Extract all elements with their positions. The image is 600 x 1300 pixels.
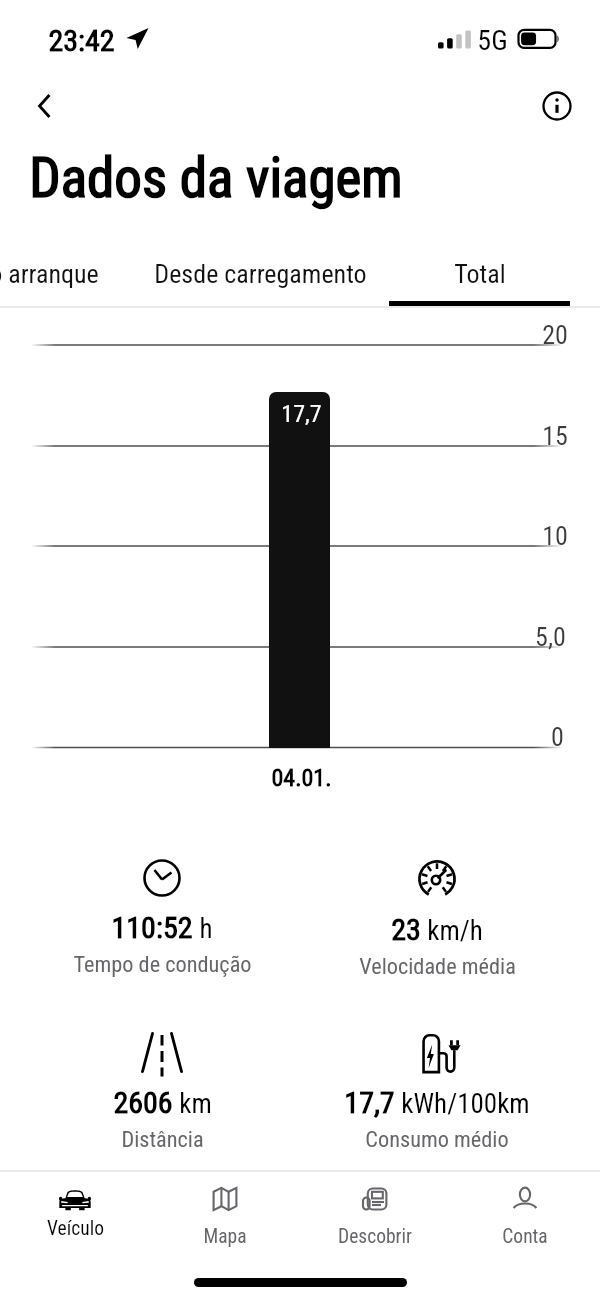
staticText: 17,7 xyxy=(281,400,322,428)
staticText: 5G xyxy=(477,24,508,57)
staticText: km xyxy=(179,1088,212,1120)
button[interactable]: 17,7 xyxy=(287,1031,587,1152)
staticText: 10 xyxy=(542,521,568,551)
button[interactable]: Back xyxy=(21,84,65,128)
staticText: Velocidade média xyxy=(359,953,516,979)
staticText: 23 xyxy=(391,912,421,947)
staticText: Consumo médio xyxy=(365,1126,509,1152)
staticText: 0 xyxy=(551,722,564,752)
staticText: Distância xyxy=(121,1126,204,1152)
staticText: Mapa xyxy=(203,1225,247,1248)
staticText: 2606 xyxy=(113,1085,173,1120)
button[interactable]: Desde carregamento xyxy=(150,242,370,306)
staticText: Total xyxy=(454,259,506,289)
staticText: 5,0 xyxy=(535,622,566,652)
staticText: 20 xyxy=(542,320,568,350)
button[interactable]: Total xyxy=(389,242,570,306)
button[interactable]: Conta xyxy=(450,1184,600,1254)
button[interactable]: Descobrir xyxy=(300,1184,450,1254)
staticText: km/h xyxy=(427,915,483,947)
staticText: Veículo xyxy=(47,1217,104,1240)
staticText: Descobrir xyxy=(338,1225,412,1248)
staticText: Dados da viagem xyxy=(29,146,403,210)
button[interactable]: Info xyxy=(535,84,579,128)
staticText: kWh/100km xyxy=(401,1088,530,1120)
button[interactable]: 2606 xyxy=(12,1031,312,1152)
staticText: 15 xyxy=(542,421,568,451)
button[interactable]: 110:52 xyxy=(12,858,312,977)
staticText: 110:52 xyxy=(111,910,193,945)
button[interactable]: 23 xyxy=(287,858,587,979)
staticText: Conta xyxy=(502,1225,548,1248)
staticText: 23:42 xyxy=(48,23,115,58)
staticText: 04.01. xyxy=(271,764,332,792)
staticText: Tempo de condução xyxy=(73,951,252,977)
button[interactable]: Veículo xyxy=(0,1184,150,1254)
staticText: o arranque xyxy=(0,259,99,289)
staticText: h xyxy=(199,913,213,945)
staticText: Desde carregamento xyxy=(154,259,367,289)
button[interactable]: Mapa xyxy=(150,1184,300,1254)
staticText: 17,7 xyxy=(344,1085,395,1120)
button[interactable]: o arranque xyxy=(0,242,114,306)
